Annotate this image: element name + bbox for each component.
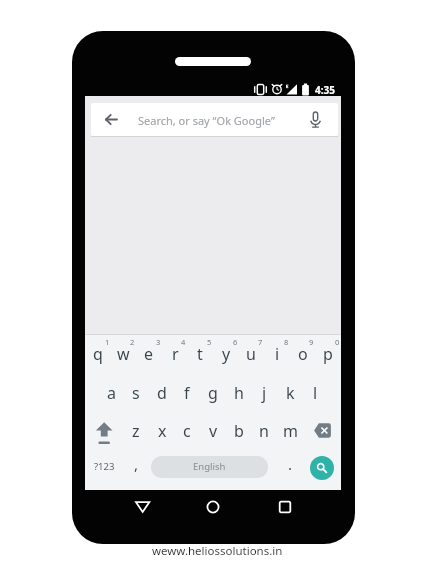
staticText: p (323, 343, 333, 365)
staticText: 4 (181, 337, 186, 347)
staticText: v (209, 420, 218, 442)
button[interactable]: ?123 (87, 451, 121, 481)
button[interactable]: r (163, 337, 187, 371)
staticText: 8 (284, 337, 289, 347)
button[interactable] (91, 103, 338, 136)
staticText: j (262, 382, 267, 404)
button[interactable]: m (278, 413, 302, 449)
staticText: m (283, 420, 298, 442)
button[interactable]: i (265, 337, 289, 371)
staticText: r (172, 343, 179, 365)
button[interactable]: g (201, 375, 225, 411)
button[interactable]: f (175, 375, 199, 411)
staticText: 4:35 (315, 83, 335, 97)
button[interactable]: u (239, 337, 263, 371)
staticText: n (259, 420, 269, 442)
staticText: e (144, 343, 154, 365)
staticText: English (193, 460, 226, 473)
staticText: 2 (130, 337, 135, 347)
button[interactable] (151, 456, 268, 478)
button[interactable]: l (303, 375, 327, 411)
button[interactable]: q (86, 337, 110, 371)
staticText: w (117, 343, 130, 365)
staticText: k (286, 382, 295, 404)
button[interactable]: h (227, 375, 251, 411)
staticText: h (234, 382, 244, 404)
staticText: a (107, 382, 116, 404)
staticText: f (184, 382, 190, 404)
staticText: i (275, 343, 280, 365)
staticText: 7 (258, 337, 263, 347)
staticText: 6 (233, 337, 238, 347)
staticText: , (134, 454, 139, 474)
button[interactable]: s (124, 375, 148, 411)
button[interactable]: p (316, 337, 340, 371)
button[interactable]: z (124, 413, 148, 449)
staticText: g (208, 382, 218, 404)
staticText: c (183, 420, 191, 442)
staticText: d (157, 382, 167, 404)
staticText: q (93, 343, 103, 365)
staticText: 9 (309, 337, 314, 347)
staticText: s (132, 382, 140, 404)
button[interactable] (125, 493, 161, 521)
button[interactable]: . (280, 449, 300, 479)
button[interactable]: y (214, 337, 238, 371)
button[interactable]: w (111, 337, 135, 371)
button[interactable] (310, 456, 334, 480)
staticText: t (197, 343, 203, 365)
button[interactable] (303, 412, 341, 450)
button[interactable]: o (291, 337, 315, 371)
staticText: . (288, 454, 293, 474)
staticText: weww.heliossolutions.in (152, 543, 283, 559)
button[interactable]: v (201, 413, 225, 449)
button[interactable]: x (150, 413, 174, 449)
staticText: 1 (105, 337, 110, 347)
staticText: ?123 (94, 460, 115, 473)
button[interactable]: k (278, 375, 302, 411)
button[interactable]: n (252, 413, 276, 449)
button[interactable]: e (137, 337, 161, 371)
button[interactable]: t (188, 337, 212, 371)
button[interactable]: c (175, 413, 199, 449)
staticText: 5 (207, 337, 212, 347)
staticText: Search, or say “Ok Google” (138, 113, 275, 128)
button[interactable]: a (99, 375, 123, 411)
staticText: b (234, 420, 244, 442)
button[interactable]: d (150, 375, 174, 411)
staticText: x (158, 420, 167, 442)
button[interactable] (267, 493, 303, 521)
button[interactable]: b (227, 413, 251, 449)
staticText: 0 (335, 337, 340, 347)
button[interactable] (195, 493, 231, 521)
staticText: 3 (156, 337, 161, 347)
staticText: y (222, 343, 231, 365)
button[interactable] (85, 412, 123, 450)
staticText: z (132, 420, 140, 442)
staticText: u (246, 343, 256, 365)
button[interactable]: j (252, 375, 276, 411)
button[interactable]: , (126, 449, 146, 479)
staticText: o (298, 343, 308, 365)
staticText: l (313, 382, 318, 404)
